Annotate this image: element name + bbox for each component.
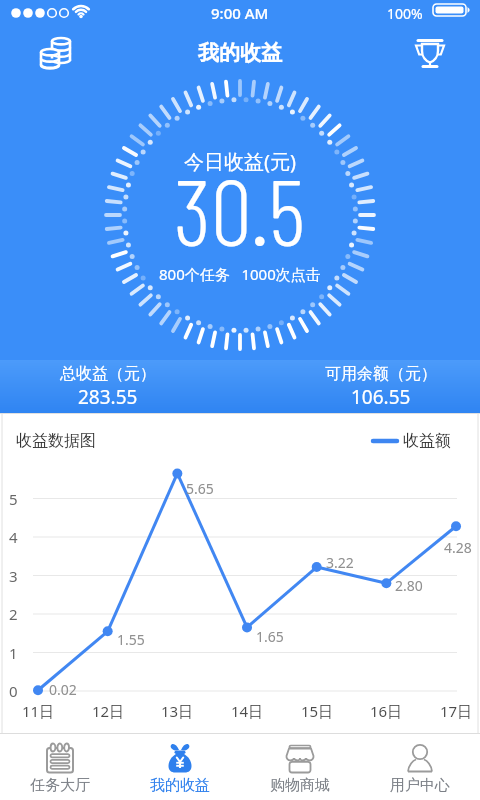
button[interactable]: 总收益（元） [0, 360, 228, 413]
staticText: 17日 [440, 701, 473, 721]
staticText: 我的收益 [198, 40, 282, 66]
staticText: 15日 [301, 701, 334, 721]
staticText: 4 [9, 527, 18, 547]
staticText: 3.22 [326, 553, 354, 572]
staticText: 30.5 [174, 154, 306, 264]
staticText: 800个任务 1000次点击 [159, 264, 321, 284]
button[interactable] [36, 33, 76, 73]
staticText: 购物商城 [270, 776, 330, 795]
staticText: 1.65 [256, 627, 284, 646]
staticText: 2.80 [395, 576, 423, 595]
staticText: 5.65 [186, 479, 214, 498]
staticText: 11日 [22, 701, 55, 721]
staticText: 106.55 [351, 384, 411, 410]
staticText: 1.55 [117, 630, 145, 649]
staticText: 100% [387, 4, 423, 23]
button[interactable]: 任务大厅 [0, 733, 120, 800]
button[interactable]: 用户中心 [360, 733, 480, 800]
staticText: 2 [9, 604, 18, 624]
staticText: 16日 [370, 701, 403, 721]
staticText: 4.28 [444, 538, 472, 557]
staticText: 任务大厅 [30, 776, 90, 795]
staticText: 今日收益(元) [184, 148, 296, 175]
staticText: 0.02 [49, 680, 77, 699]
staticText: 1 [9, 643, 18, 663]
button[interactable]: 购物商城 [240, 733, 360, 800]
staticText: 我的收益 [150, 776, 210, 795]
staticText: 9:00 AM [211, 3, 269, 23]
button[interactable]: 我的收益 [120, 733, 240, 800]
staticText: 0 [9, 681, 18, 701]
button[interactable]: 可用余额（元） [261, 360, 480, 413]
button[interactable] [410, 33, 450, 73]
staticText: 收益额 [403, 431, 451, 451]
staticText: 12日 [92, 701, 125, 721]
staticText: 3 [9, 566, 18, 586]
staticText: 可用余额（元） [325, 364, 437, 384]
staticText: 总收益（元） [60, 364, 156, 384]
staticText: 283.55 [78, 384, 138, 410]
staticText: 收益数据图 [16, 431, 96, 451]
staticText: 13日 [161, 701, 194, 721]
staticText: 14日 [231, 701, 264, 721]
staticText: 用户中心 [390, 776, 450, 795]
staticText: 5 [9, 489, 18, 509]
